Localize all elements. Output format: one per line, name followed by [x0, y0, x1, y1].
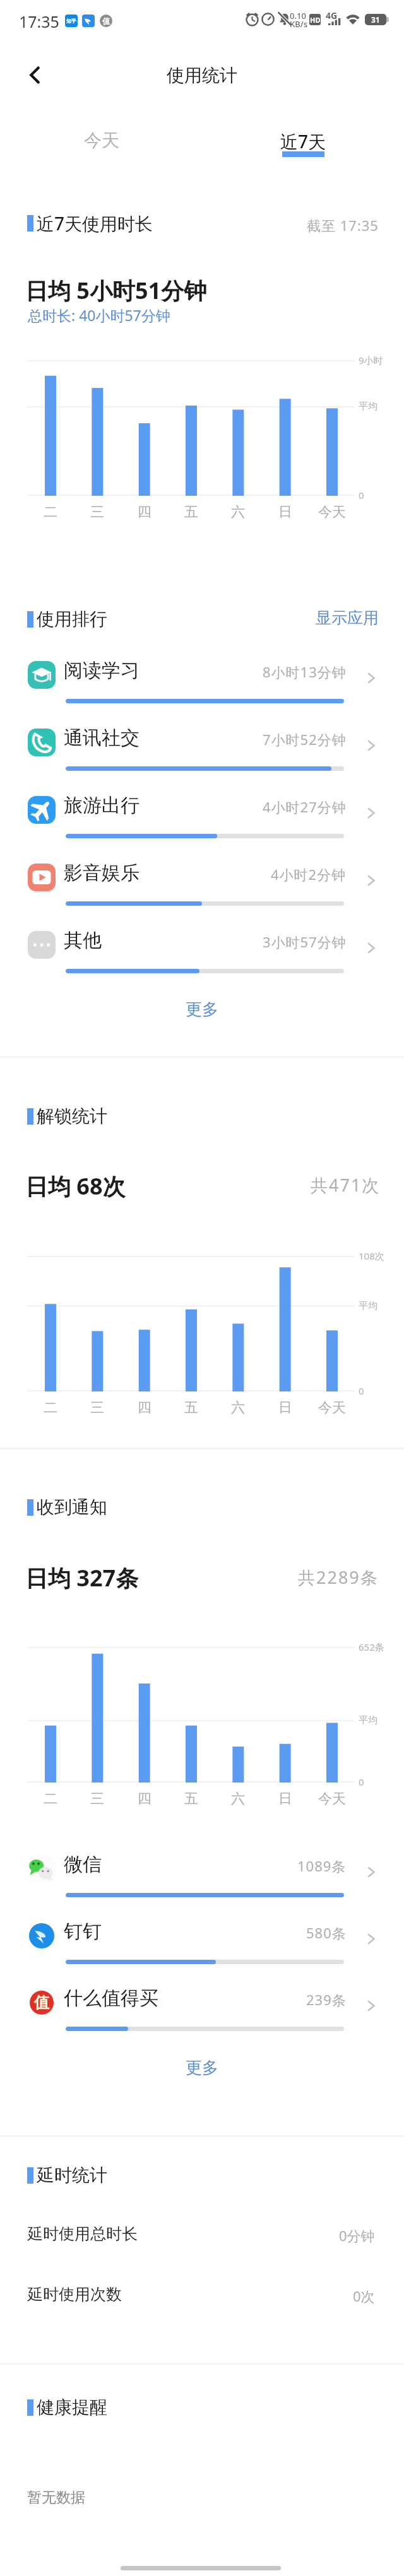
staticText: 今天 [318, 1399, 346, 1417]
staticText: 日 [278, 1790, 292, 1808]
staticText: 17:35 [19, 11, 59, 32]
staticText: 微信 [64, 1853, 102, 1876]
button[interactable]: 显示应用 [316, 608, 379, 628]
staticText: 二 [44, 1790, 57, 1808]
button[interactable]: 值 [0, 1980, 404, 2043]
staticText: 0次 [353, 2286, 375, 2305]
staticText: 1089条 [297, 1856, 347, 1875]
staticText: HD [310, 15, 321, 25]
button[interactable]: Back [16, 57, 53, 93]
staticText: 四 [138, 503, 151, 521]
staticText: 收到通知 [37, 1496, 107, 1518]
staticText: 平均 [359, 401, 377, 413]
staticText: 三 [90, 1790, 104, 1808]
staticText: 4小时27分钟 [263, 797, 347, 816]
staticText: 0.10 [290, 10, 306, 21]
staticText: 近7天使用时长 [37, 211, 153, 235]
staticText: 五 [184, 1790, 198, 1808]
staticText: 延时使用次数 [27, 2285, 122, 2304]
staticText: 截至 17:35 [307, 216, 379, 235]
staticText: 平均 [359, 1714, 377, 1726]
button[interactable]: 微信 [0, 1846, 404, 1909]
button[interactable]: 钉钉 [0, 1913, 404, 1976]
button[interactable]: 通讯社交 [0, 720, 404, 783]
staticText: 二 [44, 503, 57, 521]
staticText: 更多 [186, 2058, 218, 2078]
button[interactable]: 更多 [186, 999, 218, 1020]
staticText: 7小时52分钟 [263, 730, 347, 749]
staticText: 值 [34, 1993, 49, 2012]
staticText: 今天 [318, 503, 346, 521]
staticText: 六 [231, 1790, 245, 1808]
button[interactable]: 今天 [70, 129, 133, 162]
staticText: 日均 68次 [25, 1171, 126, 1202]
staticText: 影音娱乐 [64, 861, 140, 885]
staticText: 显示应用 [316, 608, 379, 628]
staticText: 3小时57分钟 [263, 932, 347, 951]
staticText: 日 [278, 1399, 292, 1417]
staticText: 延时使用总时长 [27, 2224, 138, 2244]
staticText: 六 [231, 1399, 245, 1417]
staticText: 二 [44, 1399, 57, 1417]
staticText: 8小时13分钟 [263, 662, 347, 681]
button[interactable]: 影音娱乐 [0, 855, 404, 918]
staticText: 580条 [306, 1923, 347, 1942]
staticText: 使用统计 [167, 64, 237, 86]
staticText: 9小时 [359, 354, 383, 366]
button[interactable]: 旅游出行 [0, 787, 404, 850]
button[interactable]: 更多 [186, 2058, 218, 2078]
staticText: 三 [90, 503, 104, 521]
button[interactable]: 阅读学习 [0, 652, 404, 715]
staticText: 四 [138, 1790, 151, 1808]
staticText: 108次 [359, 1250, 384, 1262]
staticText: 解锁统计 [37, 1105, 107, 1127]
staticText: 健康提醒 [37, 2396, 107, 2418]
staticText: 日均 5小时51分钟 [25, 275, 207, 306]
staticText: 使用排行 [37, 608, 107, 630]
staticText: 更多 [186, 999, 218, 1020]
staticText: 知乎 [66, 18, 76, 24]
staticText: 4小时2分钟 [271, 865, 347, 884]
staticText: 0 [359, 489, 364, 501]
staticText: 239条 [306, 1990, 347, 2009]
staticText: 四 [138, 1399, 151, 1417]
staticText: 近7天 [280, 129, 326, 153]
staticText: 0 [359, 1776, 364, 1788]
staticText: 其他 [64, 928, 102, 952]
button[interactable]: 其他 [0, 922, 404, 985]
staticText: 31 [371, 15, 380, 25]
staticText: 总时长: 40小时57分钟 [28, 305, 170, 325]
staticText: 652条 [359, 1641, 384, 1653]
staticText: 0分钟 [339, 2226, 375, 2245]
staticText: 六 [231, 503, 245, 521]
staticText: 通讯社交 [64, 726, 140, 750]
staticText: 值 [102, 16, 110, 26]
staticText: 什么值得买 [64, 1986, 158, 2010]
staticText: 旅游出行 [64, 793, 140, 817]
staticText: 阅读学习 [64, 659, 140, 682]
staticText: 三 [90, 1399, 104, 1417]
staticText: 今天 [84, 129, 119, 151]
button[interactable]: 延时使用次数 [0, 2269, 404, 2317]
staticText: 0 [359, 1385, 364, 1397]
staticText: 今天 [318, 1790, 346, 1808]
staticText: 五 [184, 503, 198, 521]
staticText: 共2289条 [298, 1566, 379, 1589]
staticText: 平均 [359, 1300, 377, 1312]
button[interactable]: 近7天 [271, 129, 335, 162]
staticText: KB/s [290, 18, 308, 30]
staticText: 日 [278, 503, 292, 521]
button[interactable]: 延时使用总时长 [0, 2209, 404, 2257]
staticText: 五 [184, 1399, 198, 1417]
staticText: 延时统计 [37, 2164, 107, 2186]
staticText: 共471次 [311, 1173, 381, 1197]
staticText: 暂无数据 [27, 2488, 85, 2507]
staticText: 钉钉 [64, 1919, 102, 1943]
staticText: 日均 327条 [25, 1562, 139, 1593]
staticText: 4G [326, 9, 338, 21]
